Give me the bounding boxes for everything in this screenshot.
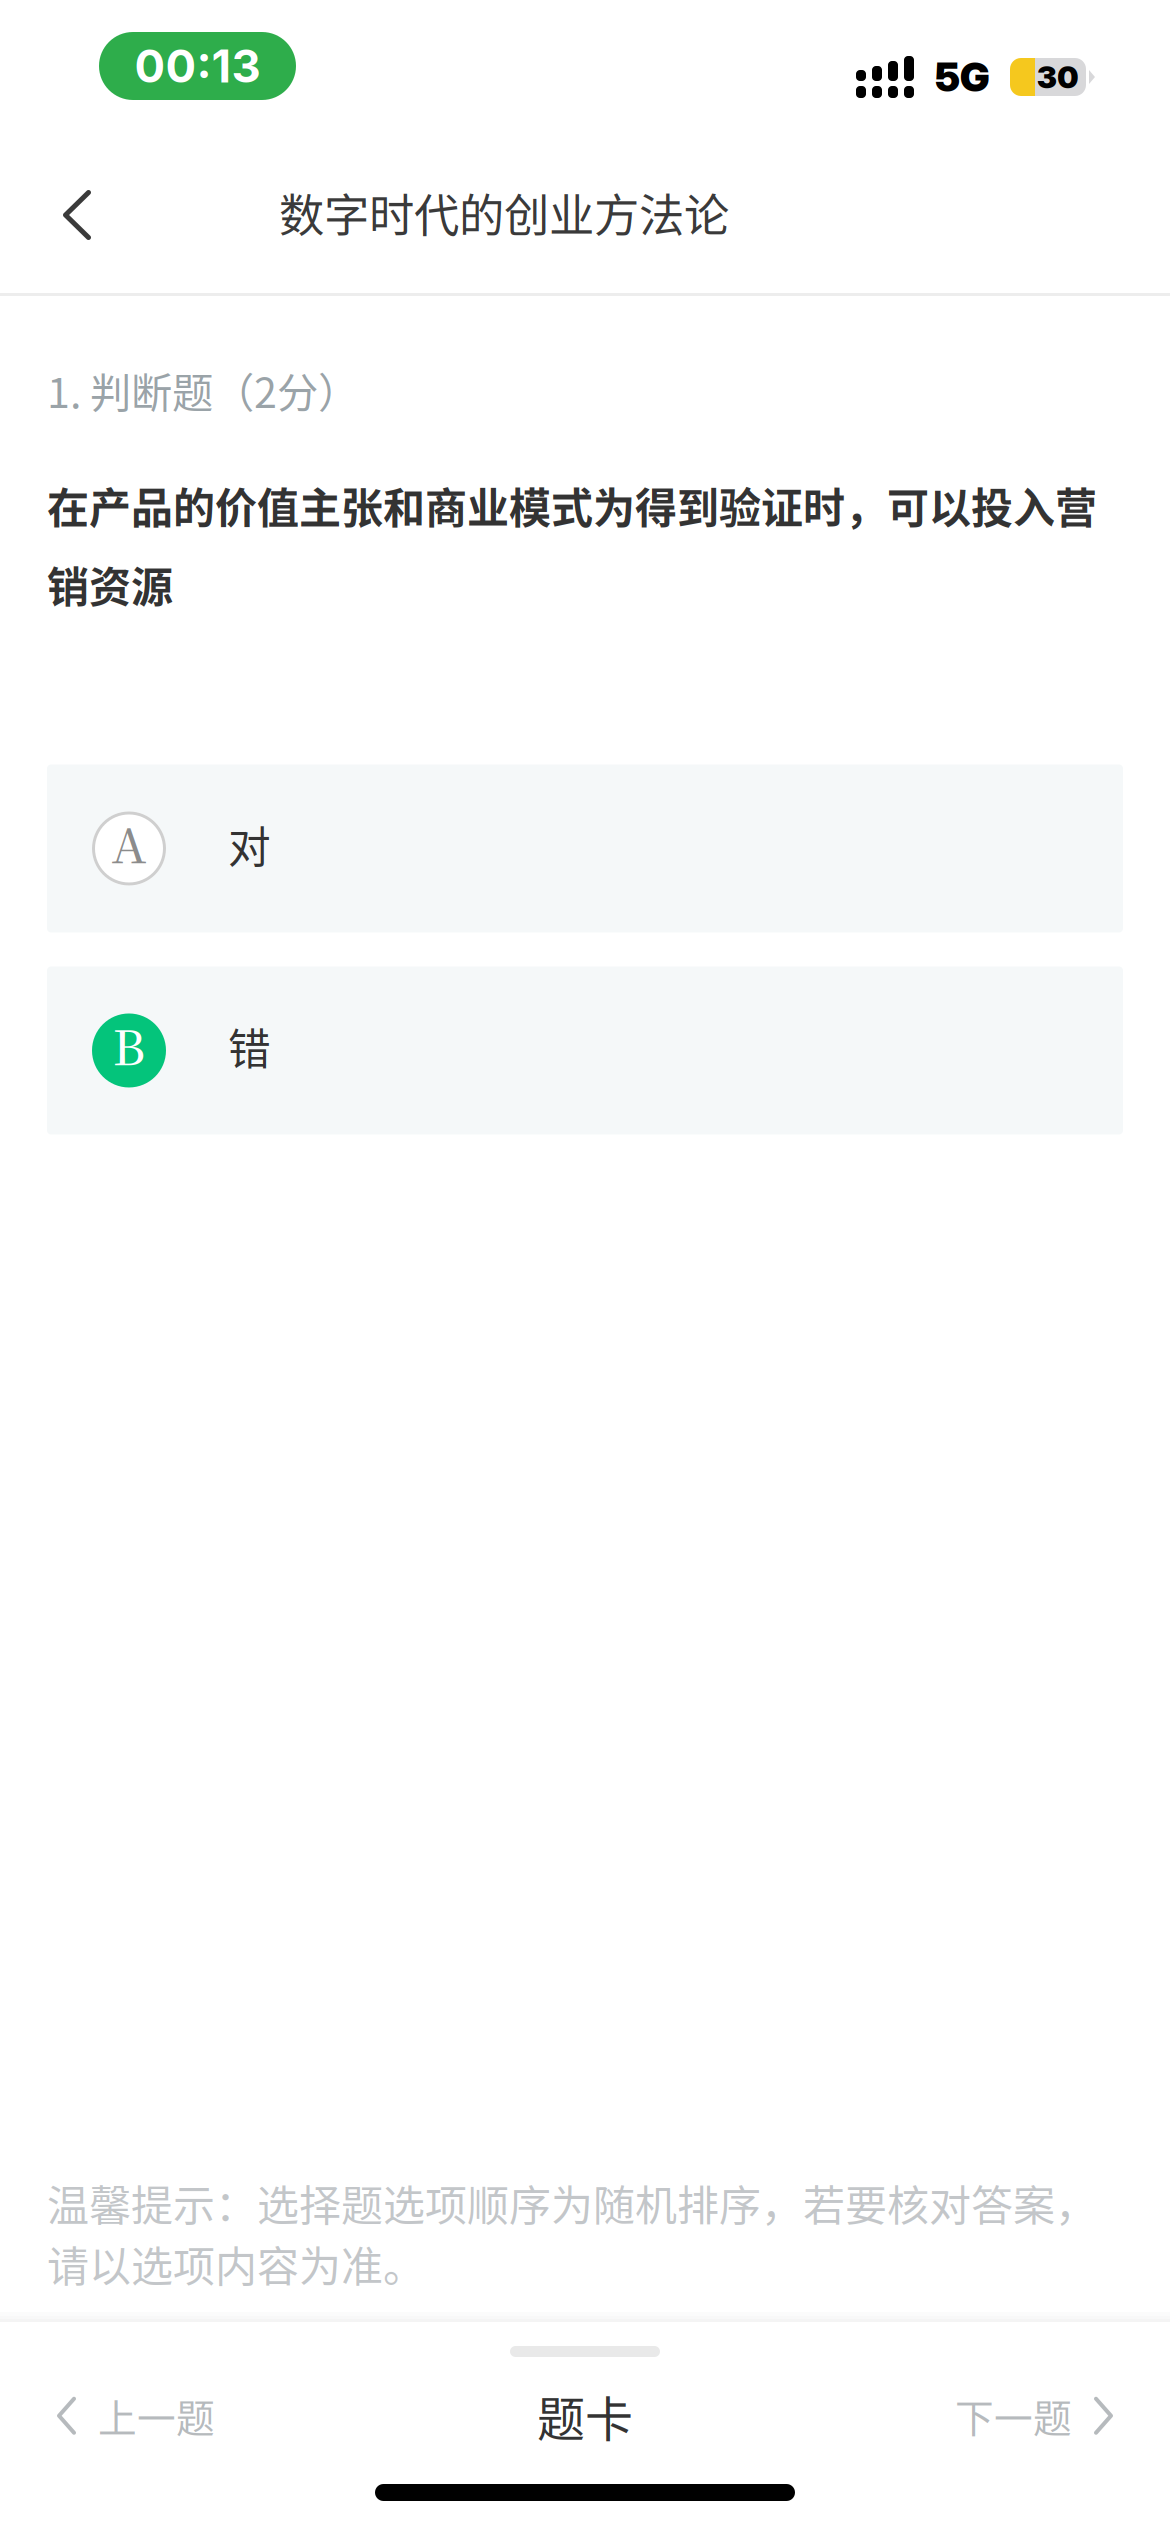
button[interactable]: B [47,966,1123,1134]
staticText: 30 [1037,58,1079,95]
button[interactable]: 下一题 [935,2374,1113,2458]
button[interactable]: 题卡 [503,2367,667,2464]
staticText: 题卡 [537,2381,633,2450]
staticText: 下一题 [955,2388,1072,2444]
staticText: B [112,1010,145,1079]
staticText: 在产品的价值主张和商业模式为得到验证时，可以投入营销资源 [47,475,1097,614]
staticText: 数字时代的创业方法论 [279,180,729,245]
staticText: 1. 判断题（2分） [47,360,359,420]
button[interactable]: 上一题 [57,2374,235,2458]
staticText: 错 [228,1016,271,1077]
staticText: 温馨提示：选择题选项顺序为随机排序，若要核对答案，请以选项内容为准。 [47,2172,1097,2294]
staticText: 上一题 [98,2388,215,2444]
button[interactable]: A [47,764,1123,932]
button[interactable]: Back [0,132,121,269]
staticText: 对 [228,814,271,875]
staticText: 00:13 [134,39,260,93]
staticText: 5G [935,53,990,101]
staticText: A [111,808,146,877]
